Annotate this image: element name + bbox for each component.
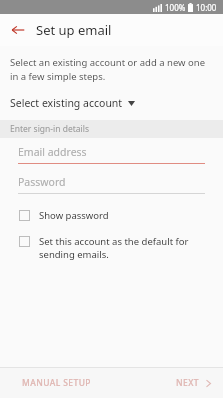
button[interactable]: Password [0,175,223,194]
button[interactable]: MANUAL SETUP [0,368,103,398]
staticText: Show password [39,209,109,222]
staticText: Set up email [36,21,112,39]
button[interactable]: Show password [0,207,223,224]
staticText: 10:00 [196,2,217,13]
staticText: MANUAL SETUP [22,377,91,389]
staticText: Password [18,175,66,189]
button[interactable]: Set this account as the default for send… [0,233,223,263]
staticText: Enter sign-in details [10,123,90,135]
staticText: NEXT [176,377,199,389]
button[interactable]: Navigate up [8,20,28,40]
staticText: Email address [18,145,87,159]
staticText: 100% [165,2,186,13]
staticText: Set this account as the default for send… [39,235,205,261]
button[interactable]: NEXT [164,368,223,398]
button[interactable]: Select existing account [0,93,223,113]
button[interactable]: Email address [0,145,223,164]
staticText: Select an existing account or add a new … [10,56,213,83]
staticText: Select existing account [10,96,123,110]
